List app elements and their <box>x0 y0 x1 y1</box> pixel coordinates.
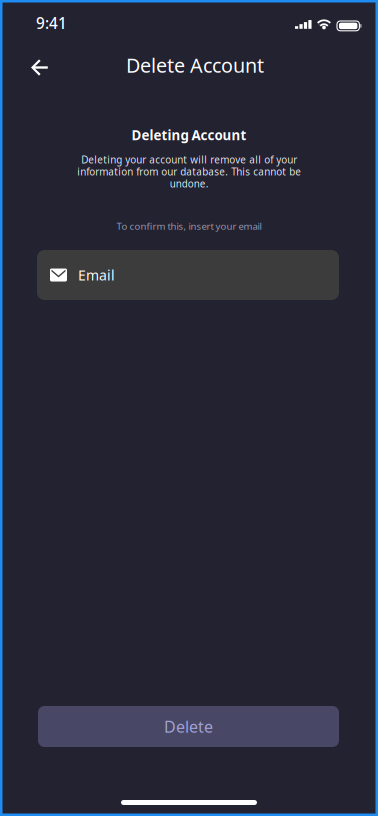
staticText: To confirm this, insert your email <box>116 219 261 233</box>
staticText: Deleting your account will remove all of… <box>77 153 301 190</box>
staticText: Email <box>78 265 115 285</box>
button[interactable]: Email <box>37 250 339 300</box>
staticText: Delete Account <box>126 52 264 78</box>
button[interactable]: Delete <box>38 706 339 747</box>
staticText: Delete <box>164 716 213 737</box>
staticText: 9:41 <box>36 13 67 33</box>
button[interactable]: Back <box>19 47 60 88</box>
staticText: Deleting Account <box>131 126 246 144</box>
